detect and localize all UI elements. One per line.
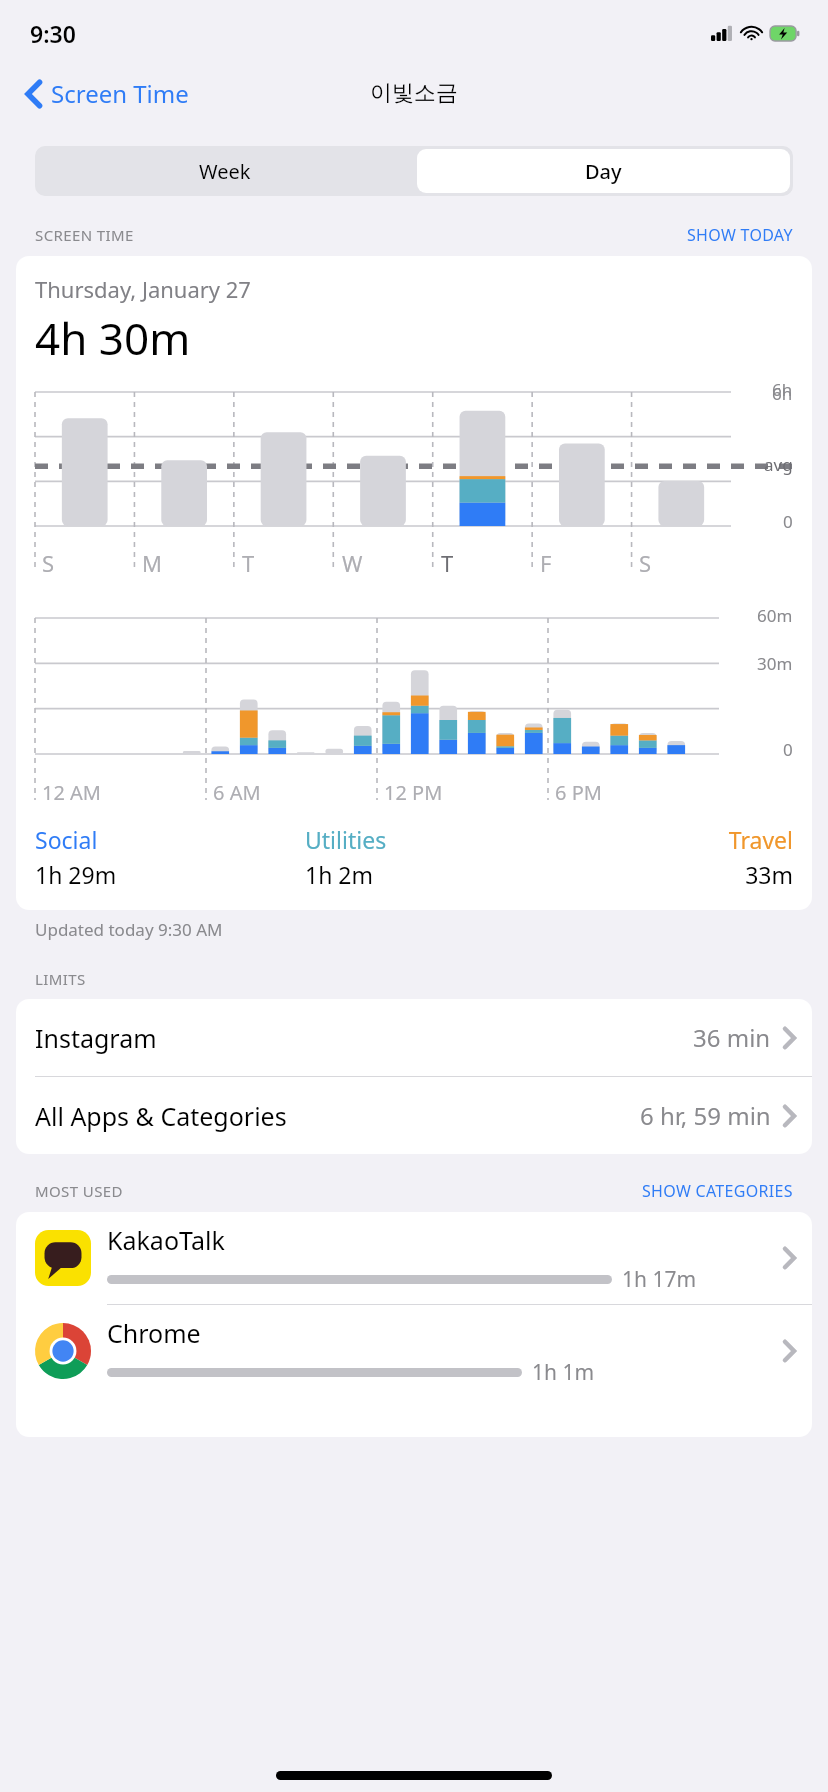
staticText: 60m xyxy=(757,604,793,627)
button[interactable]: Back xyxy=(22,71,193,116)
staticText: 6 AM xyxy=(213,779,261,806)
button[interactable]: KakaoTalk xyxy=(16,1212,812,1305)
staticText: Social xyxy=(35,824,305,855)
staticText: 6 PM xyxy=(555,779,602,806)
staticText: Screen Time xyxy=(51,77,189,110)
staticText: Instagram xyxy=(35,1021,157,1055)
staticText: T xyxy=(441,548,454,578)
staticText: 4h 30m xyxy=(35,308,191,368)
staticText: 0 xyxy=(783,510,793,533)
staticText: 33m xyxy=(576,859,793,890)
staticText: 9:30 xyxy=(30,18,76,49)
staticText: 12 PM xyxy=(384,779,443,806)
staticText: Thursday, January 27 xyxy=(35,274,251,304)
staticText: 36 min xyxy=(693,1021,771,1054)
staticText: KakaoTalk xyxy=(107,1223,225,1257)
staticText: M xyxy=(142,548,162,578)
other: Back xyxy=(26,80,42,108)
staticText: LIMITS xyxy=(35,969,86,989)
staticText: 1h 1m xyxy=(532,1358,595,1387)
button[interactable]: SHOW CATEGORIES xyxy=(642,1180,793,1202)
staticText: 12 AM xyxy=(42,779,101,806)
staticText: Travel xyxy=(576,824,793,855)
button[interactable]: Day xyxy=(417,149,790,193)
staticText: 이빛소금 xyxy=(370,79,458,107)
staticText: Day xyxy=(585,158,622,185)
button[interactable]: Instagram xyxy=(16,999,812,1077)
button[interactable]: All Apps & Categories xyxy=(16,1077,812,1154)
staticText: F xyxy=(540,548,552,578)
staticText: 1h 29m xyxy=(35,859,305,890)
staticText: All Apps & Categories xyxy=(35,1099,287,1133)
staticText: 0 xyxy=(783,738,793,761)
staticText: SHOW CATEGORIES xyxy=(642,1180,793,1202)
staticText: T xyxy=(242,548,255,578)
staticText: 1h 2m xyxy=(305,859,576,890)
staticText: SHOW TODAY xyxy=(687,224,793,246)
button[interactable]: SHOW TODAY xyxy=(687,224,793,246)
staticText: 6h xyxy=(772,378,793,401)
staticText: 6 hr, 59 min xyxy=(640,1099,771,1132)
staticText: W xyxy=(342,548,363,578)
button[interactable]: Week xyxy=(35,146,414,196)
staticText: Chrome xyxy=(107,1316,201,1350)
staticText: Updated today 9:30 AM xyxy=(35,918,223,941)
staticText: S xyxy=(639,548,652,578)
staticText: S xyxy=(42,548,55,578)
staticText: 30m xyxy=(757,652,793,675)
staticText: avg xyxy=(764,453,793,476)
staticText: Utilities xyxy=(305,824,576,855)
staticText: SCREEN TIME xyxy=(35,225,134,245)
staticText: Week xyxy=(199,158,251,185)
staticText: MOST USED xyxy=(35,1181,123,1201)
staticText: 6h xyxy=(772,382,793,405)
staticText: 1h 17m xyxy=(622,1265,697,1294)
button[interactable]: Chrome xyxy=(16,1305,812,1397)
